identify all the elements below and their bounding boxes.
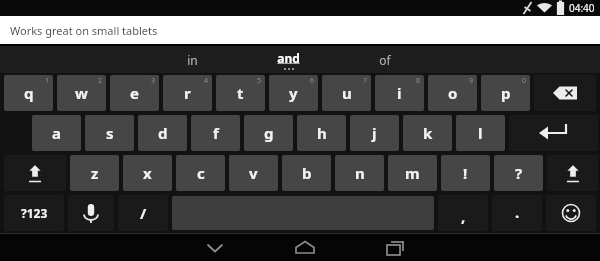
staticText: ?123 — [21, 205, 48, 221]
button[interactable]: r — [163, 75, 212, 111]
button[interactable]: k — [403, 115, 452, 151]
button[interactable]: o — [428, 75, 477, 111]
button[interactable]: p — [481, 75, 530, 111]
button[interactable]: Recent apps — [350, 234, 440, 261]
staticText: g — [264, 123, 274, 143]
staticText: y — [289, 83, 298, 103]
staticText: s — [106, 123, 114, 143]
button[interactable]: s — [85, 115, 134, 151]
button[interactable]: d — [138, 115, 187, 151]
staticText: Works great on small tablets — [10, 23, 158, 38]
button[interactable]: in — [145, 46, 240, 73]
button[interactable]: ? — [494, 155, 543, 191]
button[interactable]: Enter — [509, 115, 598, 151]
button[interactable]: Voice input — [68, 195, 114, 231]
button[interactable]: Shift — [547, 155, 598, 191]
staticText: ? — [515, 163, 523, 183]
staticText: of — [379, 52, 391, 68]
staticText: 7 — [363, 76, 368, 86]
staticText: / — [140, 203, 147, 223]
staticText: . — [515, 202, 520, 222]
button[interactable]: Emoji — [546, 195, 596, 231]
button[interactable]: m — [388, 155, 437, 191]
staticText: e — [130, 83, 139, 103]
button[interactable]: u — [322, 75, 371, 111]
staticText: n — [355, 163, 365, 183]
staticText: p — [501, 83, 511, 103]
button[interactable]: n — [335, 155, 384, 191]
button[interactable]: ! — [441, 155, 490, 191]
staticText: x — [143, 163, 152, 183]
staticText: z — [91, 163, 99, 183]
staticText: a — [52, 123, 61, 143]
staticText: h — [317, 123, 327, 143]
button[interactable]: x — [123, 155, 172, 191]
staticText: d — [158, 123, 168, 143]
staticText: 6 — [310, 76, 315, 86]
staticText: o — [448, 83, 458, 103]
staticText: r — [184, 83, 191, 103]
button[interactable]: y — [269, 75, 318, 111]
staticText: j — [372, 123, 377, 143]
button[interactable]: q — [4, 75, 53, 111]
staticText: m — [405, 163, 420, 183]
staticText: b — [302, 163, 312, 183]
staticText: t — [237, 83, 244, 103]
button[interactable]: j — [350, 115, 399, 151]
button[interactable]: w — [57, 75, 106, 111]
staticText: w — [75, 83, 88, 103]
staticText: in — [187, 52, 198, 68]
staticText: v — [249, 163, 258, 183]
staticText: 0 — [522, 76, 527, 86]
button[interactable]: Backspace — [534, 75, 596, 111]
button[interactable]: Home — [260, 234, 350, 261]
button[interactable]: a — [32, 115, 81, 151]
button[interactable]: c — [176, 155, 225, 191]
staticText: and — [277, 50, 300, 66]
button[interactable]: e — [110, 75, 159, 111]
staticText: k — [423, 123, 433, 143]
button[interactable]: Symbols — [4, 195, 64, 231]
button[interactable]: Shift — [4, 155, 66, 191]
staticText: 4 — [204, 76, 209, 86]
staticText: i — [397, 83, 402, 103]
staticText: 9 — [469, 76, 474, 86]
button[interactable]: l — [456, 115, 505, 151]
staticText: 8 — [416, 76, 421, 86]
staticText: 3 — [151, 76, 156, 86]
button[interactable]: z — [70, 155, 119, 191]
button[interactable]: h — [297, 115, 346, 151]
button[interactable]: Comma — [438, 195, 488, 231]
button[interactable]: i — [375, 75, 424, 111]
staticText: , — [461, 206, 466, 226]
staticText: u — [342, 83, 352, 103]
staticText: 04:40 — [569, 1, 595, 15]
button[interactable]: and — [240, 46, 337, 73]
staticText: q — [24, 83, 34, 103]
button[interactable]: Period — [492, 195, 542, 231]
staticText: 5 — [257, 76, 262, 86]
button[interactable]: b — [282, 155, 331, 191]
button[interactable]: v — [229, 155, 278, 191]
button[interactable]: g — [244, 115, 293, 151]
button[interactable]: Hide keyboard — [170, 234, 260, 261]
button[interactable]: of — [337, 46, 432, 73]
staticText: c — [197, 163, 205, 183]
staticText: ! — [463, 163, 468, 183]
staticText: l — [478, 123, 483, 143]
button[interactable]: f — [191, 115, 240, 151]
staticText: 1 — [45, 76, 50, 86]
button[interactable]: Slash — [118, 195, 168, 231]
staticText: f — [213, 123, 219, 143]
staticText: 2 — [98, 76, 103, 86]
button[interactable]: t — [216, 75, 265, 111]
